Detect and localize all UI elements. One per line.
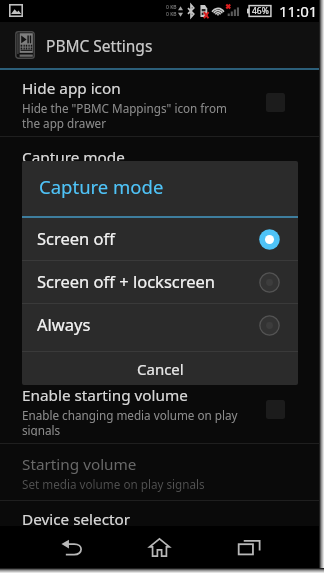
staticText: 46% [252,5,269,17]
button[interactable]: Recents [210,526,282,569]
staticText: PBMC Settings [46,35,153,56]
staticText: Starting volume [22,454,137,475]
button[interactable]: Screen off + lockscreen [22,261,298,303]
button[interactable]: Starting volume [0,445,320,501]
staticText: Enable starting volume [22,385,188,406]
button[interactable]: Capture mode [0,138,320,188]
staticText: Screen off [37,227,259,249]
staticText: Screen off + lockscreen [37,270,259,292]
staticText: Hide app icon [22,78,121,99]
staticText: 0 KB [166,4,177,11]
button[interactable]: Cancel [22,352,298,385]
staticText: Cancel [137,359,184,379]
button[interactable]: Back [36,526,108,569]
button[interactable]: Hide app icon [0,69,320,135]
staticText: Capture mode [39,174,164,199]
staticText: Device selector [22,509,131,527]
button[interactable]: Device selector [0,500,320,527]
button[interactable]: Home [123,526,195,569]
staticText: Capture mode [22,147,125,168]
staticText: 0 KB [166,11,177,18]
staticText: Hide the "PBMC Mappings" icon from the a… [22,100,227,131]
staticText: 11:01 [279,1,318,21]
staticText: Always [37,313,259,335]
button[interactable]: Screen off [22,218,298,260]
button[interactable]: PBMC Settings [0,22,320,68]
staticText: Enable changing media volume on play sig… [22,407,238,436]
button[interactable]: Enable starting volume [0,376,320,436]
staticText: Set media volume on play signals [22,476,205,492]
button[interactable]: Always [22,304,298,346]
